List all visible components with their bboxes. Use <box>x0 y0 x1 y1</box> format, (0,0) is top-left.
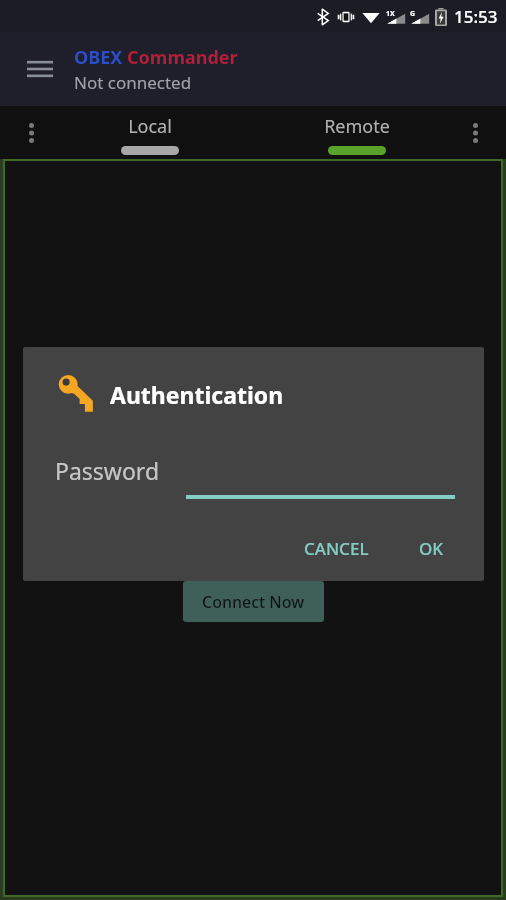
button[interactable]: Connect Now <box>183 581 324 622</box>
staticText: Not connected <box>74 71 192 94</box>
button[interactable]: Open navigation drawer <box>18 47 62 91</box>
staticText: Authentication <box>110 379 284 410</box>
button[interactable]: Remote <box>253 106 460 159</box>
staticText: Password <box>55 455 160 486</box>
button[interactable]: Remote options <box>458 116 492 150</box>
staticText: G <box>410 9 416 19</box>
staticText: OK <box>419 537 444 560</box>
staticText: Connect Now <box>202 591 305 613</box>
button[interactable]: CANCEL <box>292 528 381 569</box>
staticText: Local <box>128 114 172 139</box>
staticText: 1X <box>386 9 395 19</box>
button[interactable]: Local <box>46 106 253 159</box>
staticText: 15:53 <box>454 5 498 28</box>
button[interactable]: OK <box>407 528 456 569</box>
button[interactable]: Password <box>55 455 453 499</box>
staticText: Remote <box>324 114 390 139</box>
staticText: OBEX Commander <box>74 45 238 70</box>
staticText: CANCEL <box>304 537 369 560</box>
button[interactable]: Local options <box>14 116 48 150</box>
